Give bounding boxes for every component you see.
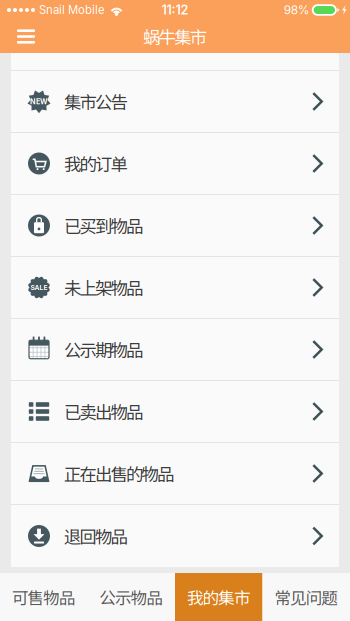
button[interactable]: 常见问题 (262, 573, 350, 621)
staticText: 可售物品 (12, 585, 76, 609)
button[interactable]: 正在出售的物品 (11, 443, 339, 505)
staticText: 98% (284, 3, 310, 17)
staticText: 已卖出物品 (64, 399, 143, 424)
staticText: NEW (30, 97, 48, 106)
button[interactable]: Menu (0, 21, 52, 52)
staticText: 11:12 (161, 2, 188, 18)
staticText: 公示期物品 (64, 337, 143, 362)
button[interactable]: SALE (11, 257, 339, 319)
button[interactable]: 公示物品 (87, 573, 175, 621)
button[interactable]: 我的订单 (11, 133, 339, 195)
staticText: SALE (30, 283, 47, 292)
button[interactable]: 已卖出物品 (11, 381, 339, 443)
staticText: 蜗牛集市 (143, 24, 207, 49)
staticText: 常见问题 (274, 585, 338, 609)
staticText: 我的集市 (187, 585, 251, 609)
button[interactable]: NEW (11, 71, 339, 133)
staticText: 我的订单 (64, 151, 127, 176)
button[interactable]: 公示期物品 (11, 319, 339, 381)
button[interactable]: 可售物品 (0, 573, 87, 621)
staticText: 正在出售的物品 (64, 461, 174, 486)
button[interactable]: 退回物品 (11, 505, 339, 567)
staticText: 未上架物品 (64, 275, 143, 300)
staticText: 退回物品 (64, 523, 127, 549)
staticText: 公示物品 (99, 585, 163, 609)
button[interactable]: 已买到物品 (11, 195, 339, 257)
staticText: 已买到物品 (64, 213, 143, 238)
staticText: Snail Mobile (39, 3, 105, 17)
button[interactable]: 我的集市 (175, 573, 262, 621)
staticText: 集市公告 (64, 89, 127, 114)
